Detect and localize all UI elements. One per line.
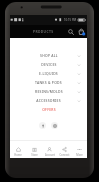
staticText: Account [45,153,55,157]
button[interactable]: TANKS & PODS [10,78,87,87]
button[interactable]: RESINS/MOLDS [10,87,87,96]
button[interactable]: DEVICES [10,60,87,69]
staticText: TANKS & PODS [35,80,62,85]
button[interactable]: Facebook [39,122,46,129]
button[interactable]: SHOP ALL [10,51,87,60]
button[interactable]: Instagram [51,122,58,129]
staticText: ACCESSORIES [36,98,61,103]
button[interactable]: Search [65,26,76,37]
button[interactable]: ACCESSORIES [10,96,87,105]
button[interactable]: E-LIQUIDS [10,69,87,78]
button[interactable]: Home [10,141,26,158]
staticText: DEVICES [41,62,57,67]
staticText: SHOP ALL [40,53,58,58]
staticText: RESINS/MOLDS [35,89,63,94]
staticText: PRODUCTS [33,29,54,34]
staticText: Home [14,153,22,157]
staticText: OFFERS [42,107,56,112]
staticText: Store [31,153,38,157]
staticText: E-LIQUIDS [39,71,58,76]
button[interactable]: OFFERS [10,105,87,114]
staticText: 10:15 PM [64,18,77,22]
staticText: More [76,153,83,157]
button[interactable]: Store [26,141,42,158]
staticText: Connect [59,153,70,157]
button[interactable]: More [72,141,87,158]
button[interactable]: Shopping bag [76,26,87,37]
button[interactable]: Account [42,141,57,158]
button[interactable]: Connect [57,141,72,158]
